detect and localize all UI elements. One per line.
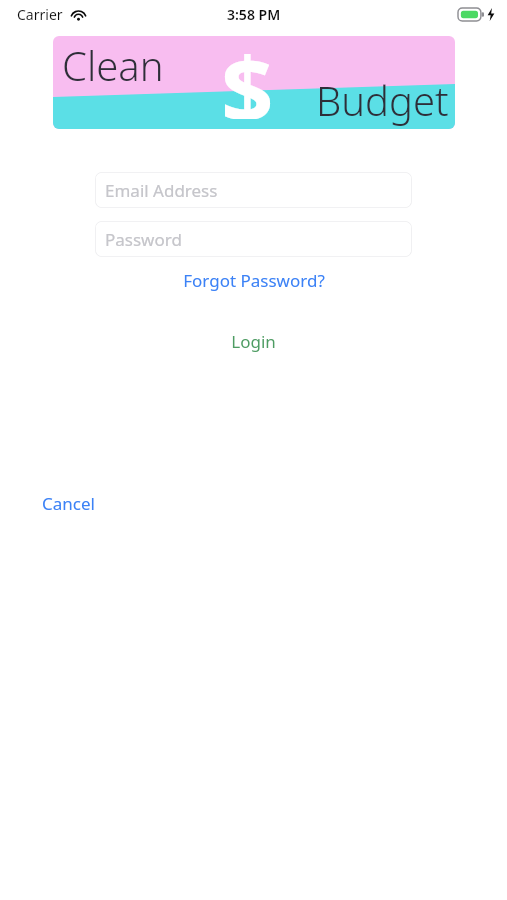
button[interactable]: Cancel bbox=[34, 488, 103, 519]
staticText: Login bbox=[231, 330, 276, 353]
button[interactable]: Forgot Password? bbox=[171, 264, 337, 297]
staticText: Password bbox=[105, 228, 182, 251]
staticText: Carrier bbox=[17, 5, 63, 24]
staticText: 3:58 PM bbox=[227, 5, 281, 24]
staticText: Forgot Password? bbox=[183, 269, 325, 292]
staticText: Cancel bbox=[42, 492, 95, 515]
other: Wi-Fi signal bbox=[70, 8, 87, 21]
button[interactable]: Email Address bbox=[95, 172, 412, 208]
staticText: Email Address bbox=[105, 179, 218, 202]
staticText: Clean bbox=[62, 38, 164, 92]
staticText: Budget bbox=[316, 73, 449, 127]
other: Battery charging bbox=[458, 8, 484, 21]
staticText: $ bbox=[221, 36, 274, 119]
button[interactable]: Login bbox=[219, 325, 288, 358]
button[interactable]: Password bbox=[95, 221, 412, 257]
